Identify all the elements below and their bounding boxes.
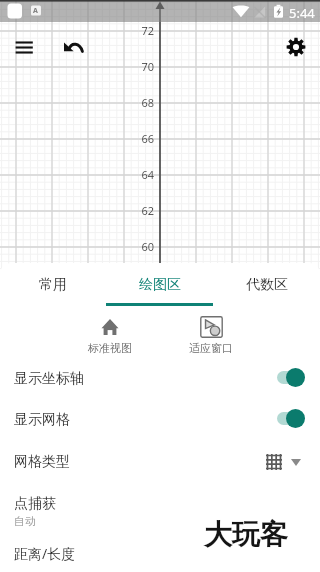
staticText: 62 xyxy=(133,203,154,218)
staticText: 常用 xyxy=(39,276,67,294)
staticText: 标准视图 xyxy=(88,341,132,355)
button[interactable]: 常用 xyxy=(0,263,106,306)
staticText: 68 xyxy=(133,95,154,110)
staticText: 70 xyxy=(133,59,154,74)
staticText: 5:44 xyxy=(289,4,315,22)
button[interactable]: Undo xyxy=(58,31,90,63)
staticText: 显示网格 xyxy=(14,411,70,429)
staticText: 60 xyxy=(133,239,154,254)
button[interactable]: 标准视图 xyxy=(75,316,145,355)
staticText: 距离/长度 xyxy=(14,544,76,563)
staticText: 代数区 xyxy=(246,276,288,294)
button[interactable]: 适应窗口 xyxy=(176,316,246,355)
staticText: 72 xyxy=(133,23,154,38)
staticText: 绘图区 xyxy=(139,276,181,294)
staticText: 网格类型 xyxy=(14,453,70,471)
staticText: 点捕获 xyxy=(14,495,56,513)
staticText: 显示坐标轴 xyxy=(14,370,84,388)
staticText: 适应窗口 xyxy=(189,341,233,355)
button[interactable]: 显示网格 xyxy=(0,399,320,440)
staticText: 自动 xyxy=(14,514,36,528)
button[interactable]: 显示坐标轴 xyxy=(0,358,320,399)
button[interactable]: 绘图区 xyxy=(106,263,213,306)
staticText: 大玩客 xyxy=(204,517,288,552)
staticText: A xyxy=(33,6,38,16)
staticText: 64 xyxy=(133,167,154,182)
button[interactable]: Settings xyxy=(280,31,312,63)
button[interactable]: 网格类型 xyxy=(0,440,320,484)
button[interactable]: Menu xyxy=(8,31,40,63)
button[interactable]: 距离/长度 xyxy=(0,532,320,572)
button[interactable]: 代数区 xyxy=(213,263,320,306)
staticText: 66 xyxy=(133,131,154,146)
button[interactable]: 点捕获 xyxy=(0,484,320,532)
